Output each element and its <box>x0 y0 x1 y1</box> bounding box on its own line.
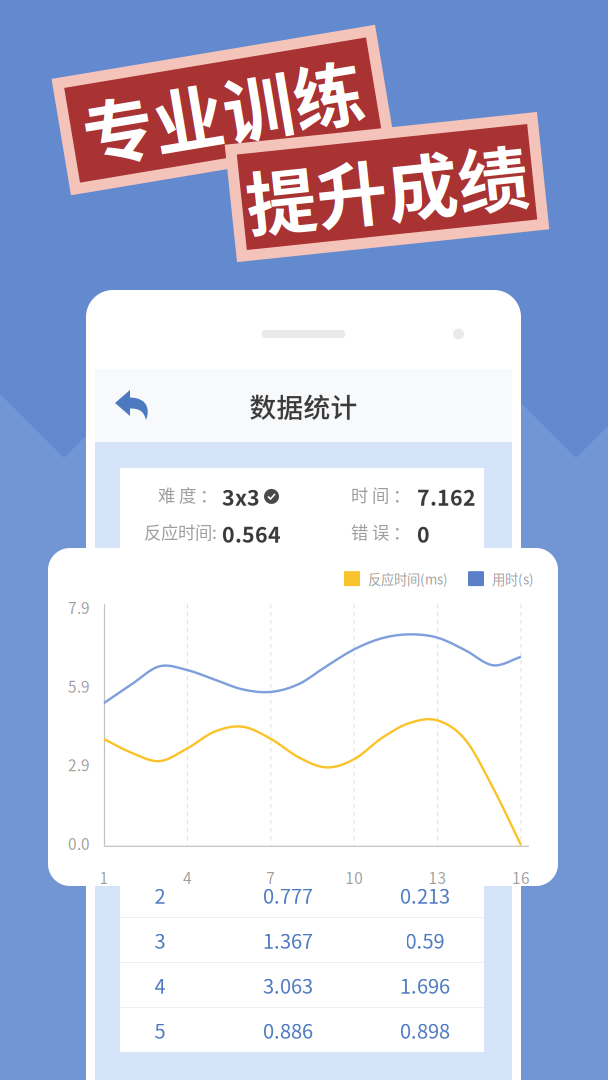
staticText: 0.213 <box>400 880 450 909</box>
button[interactable]: 2 <box>120 873 484 917</box>
staticText: 0 <box>417 518 430 549</box>
staticText: 10 <box>345 866 363 888</box>
staticText: 2 <box>154 880 165 909</box>
staticText: 用时(s) <box>492 569 534 588</box>
staticText: 4 <box>183 866 192 888</box>
staticText: 7.162 <box>417 481 476 512</box>
staticText: 1.696 <box>400 970 450 999</box>
staticText: 0.886 <box>263 1015 313 1044</box>
staticText: 1.367 <box>263 925 313 954</box>
staticText: 1 <box>154 835 165 864</box>
staticText: 3.063 <box>263 970 313 999</box>
staticText: 反应时间: <box>144 519 217 544</box>
staticText: 1 <box>99 866 108 888</box>
staticText: 专业训练 <box>81 59 365 161</box>
staticText: 4 <box>154 970 165 999</box>
staticText: 7 <box>266 866 275 888</box>
staticText: 0.898 <box>400 1015 450 1044</box>
button[interactable]: 4 <box>120 963 484 1007</box>
staticText: 7.9 <box>68 596 90 618</box>
staticText: 0.564 <box>222 518 281 549</box>
staticText: 数据统计 <box>249 386 357 425</box>
staticText: 0.564 <box>263 835 313 864</box>
staticText: 时 间 ： <box>351 482 410 507</box>
staticText: 16 <box>512 866 530 888</box>
staticText: 难 度 ： <box>158 482 217 507</box>
staticText: 0.777 <box>263 880 313 909</box>
staticText: 2.9 <box>68 753 90 776</box>
staticText: 0.0 <box>68 832 90 854</box>
staticText: 反应时间(ms) <box>368 569 448 588</box>
staticText: 3 <box>154 925 165 954</box>
staticText: 13 <box>429 866 447 888</box>
staticText: 5.9 <box>68 675 90 697</box>
button[interactable]: Back <box>95 369 171 442</box>
staticText: 提升成绩 <box>245 136 529 238</box>
staticText: 3x3 <box>222 481 260 512</box>
staticText: 5 <box>154 1015 165 1044</box>
staticText: 0.59 <box>405 925 444 954</box>
staticText: 0.564 <box>400 835 450 864</box>
button[interactable]: 1 <box>120 828 484 872</box>
button[interactable]: 5 <box>120 1008 484 1052</box>
button[interactable]: 3 <box>120 918 484 962</box>
staticText: 错 误 ： <box>351 519 410 544</box>
